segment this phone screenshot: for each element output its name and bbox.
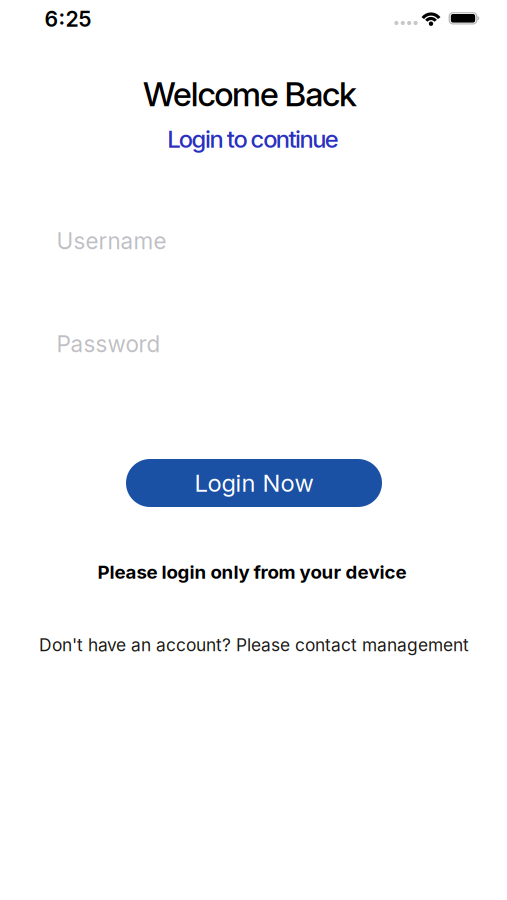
staticText: Don't have an account? Please contact ma… (39, 635, 469, 655)
staticText: Password (56, 331, 160, 357)
staticText: 6:25 (44, 6, 91, 32)
staticText: Login to continue (167, 125, 339, 153)
staticText: Welcome Back (143, 74, 357, 114)
button[interactable]: Login Now (126, 459, 382, 507)
button[interactable]: Password (56, 322, 450, 366)
staticText: Username (56, 228, 166, 254)
button[interactable]: Username (56, 219, 450, 263)
staticText: Login Now (194, 469, 313, 497)
staticText: Please login only from your device (97, 561, 406, 583)
